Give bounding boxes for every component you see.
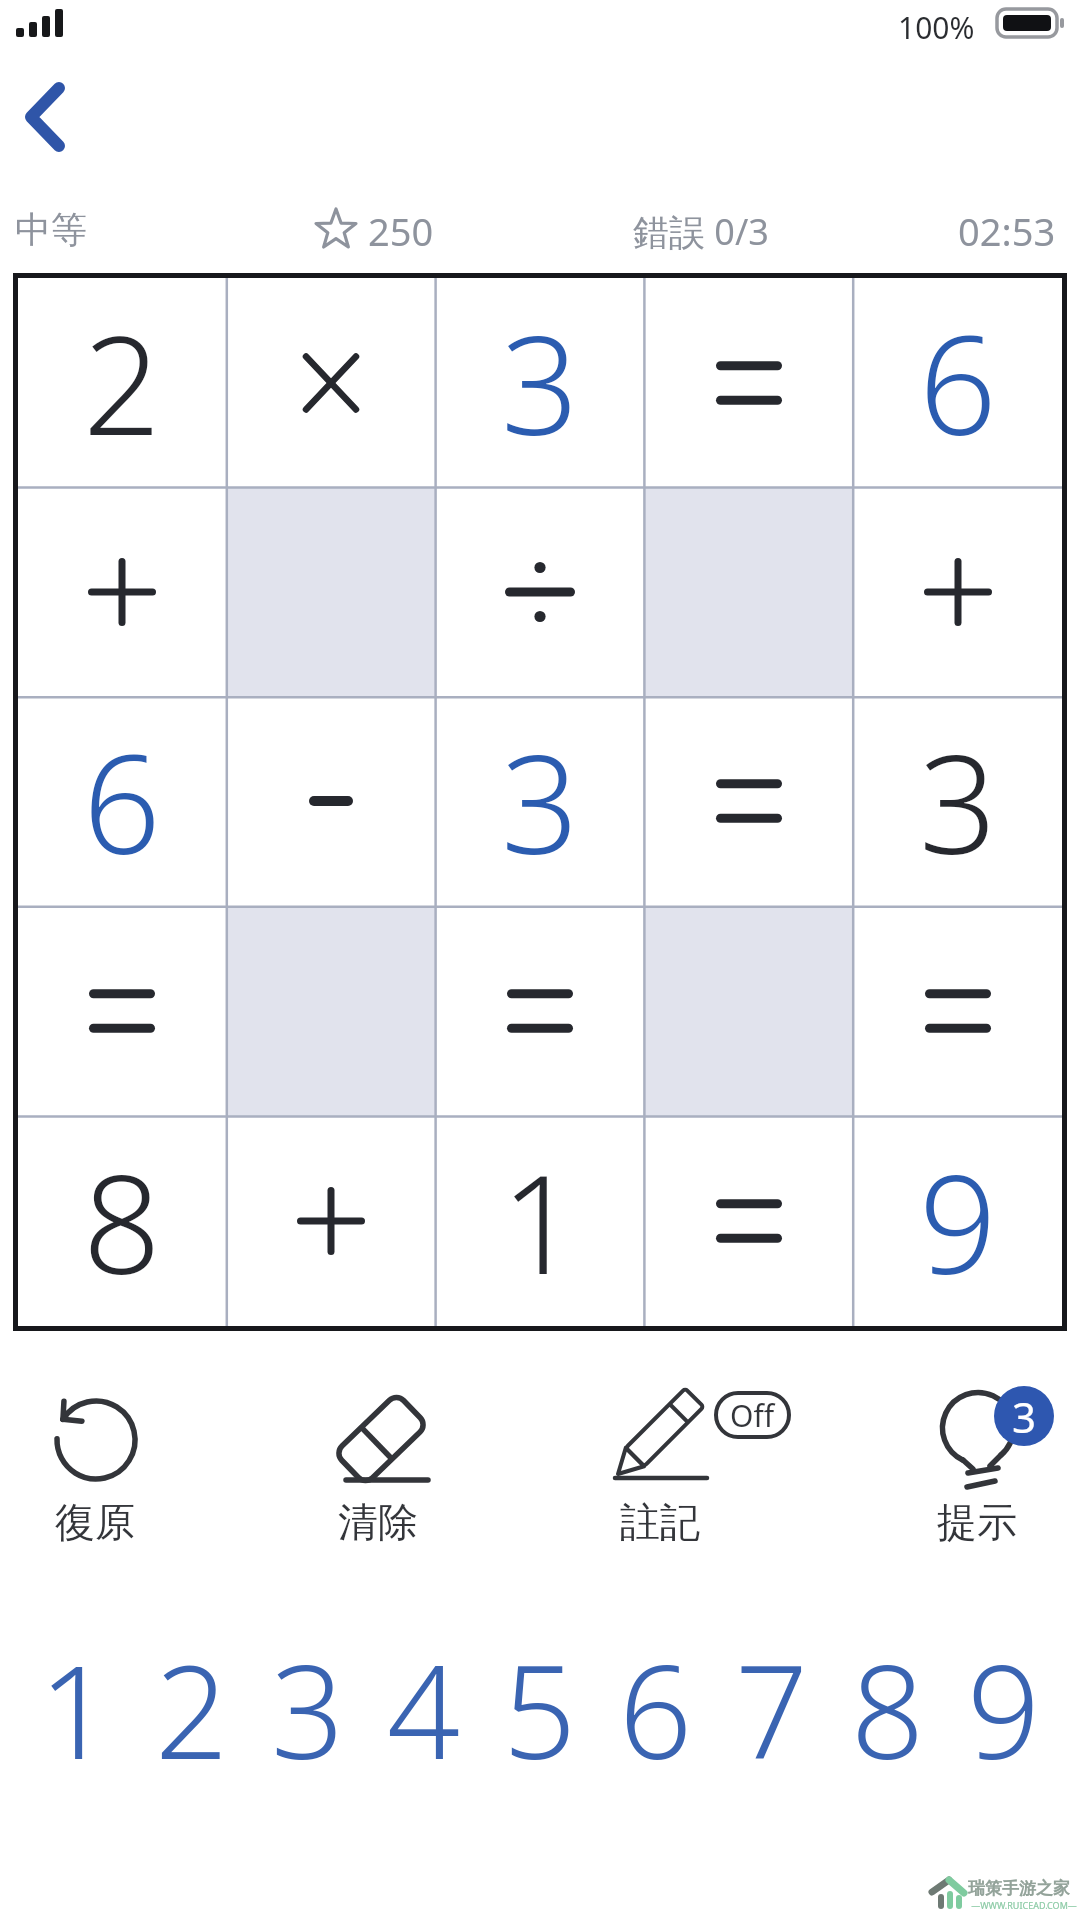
staticText: 3 <box>271 1622 345 1792</box>
button[interactable] <box>853 906 1062 1116</box>
button[interactable] <box>644 487 853 696</box>
staticText: 5 <box>503 1622 577 1792</box>
button[interactable]: 提示 <box>922 1382 1032 1547</box>
button[interactable] <box>644 696 853 906</box>
button[interactable] <box>435 906 644 1116</box>
button[interactable]: 9 <box>946 1622 1062 1792</box>
staticText: —WWW.RUICEAD.COM— <box>968 1899 1080 1911</box>
staticText: 2 <box>155 1622 229 1792</box>
button[interactable]: 3 <box>250 1622 366 1792</box>
button[interactable]: 2 <box>134 1622 250 1792</box>
staticText: 6 <box>919 290 997 475</box>
staticText: 6 <box>619 1622 693 1792</box>
button[interactable] <box>226 696 435 906</box>
staticText: Off <box>730 1395 775 1436</box>
button[interactable] <box>226 278 435 487</box>
button[interactable]: 8 <box>18 1116 226 1326</box>
staticText: 4 <box>387 1622 461 1792</box>
staticText: 中等 <box>15 207 87 252</box>
button[interactable]: 1 <box>435 1116 644 1326</box>
staticText: 9 <box>919 1129 997 1314</box>
button[interactable] <box>14 76 78 160</box>
staticText: 3 <box>919 709 997 894</box>
staticText: 3 <box>501 709 579 894</box>
staticText: 提示 <box>937 1497 1017 1547</box>
button[interactable]: 清除 <box>323 1382 433 1547</box>
button[interactable]: 3 <box>853 696 1062 906</box>
staticText: 註記 <box>620 1497 700 1547</box>
button[interactable]: 4 <box>366 1622 482 1792</box>
staticText: 250 <box>368 205 434 257</box>
button[interactable]: 2 <box>18 278 226 487</box>
button[interactable]: 3 <box>435 696 644 906</box>
button[interactable] <box>644 278 853 487</box>
button[interactable]: 6 <box>853 278 1062 487</box>
button[interactable] <box>226 487 435 696</box>
staticText: 復原 <box>55 1497 135 1547</box>
button[interactable] <box>435 487 644 696</box>
button[interactable]: 8 <box>830 1622 946 1792</box>
button[interactable]: 9 <box>853 1116 1062 1326</box>
staticText: 9 <box>967 1622 1041 1792</box>
staticText: 2 <box>83 290 161 475</box>
staticText: 清除 <box>338 1497 418 1547</box>
button[interactable]: 6 <box>598 1622 714 1792</box>
button[interactable] <box>644 906 853 1116</box>
button[interactable]: 1 <box>18 1622 134 1792</box>
button[interactable] <box>226 906 435 1116</box>
staticText: 8 <box>851 1622 925 1792</box>
staticText: 錯誤 0/3 <box>633 207 769 256</box>
button[interactable]: 註記 <box>605 1382 715 1547</box>
staticText: 3 <box>1012 1388 1037 1445</box>
staticText: 3 <box>501 290 579 475</box>
button[interactable] <box>226 1116 435 1326</box>
staticText: 1 <box>501 1129 579 1314</box>
staticText: 100% <box>898 7 975 48</box>
button[interactable]: 5 <box>482 1622 598 1792</box>
staticText: 8 <box>83 1129 161 1314</box>
button[interactable] <box>644 1116 853 1326</box>
staticText: 6 <box>83 709 161 894</box>
button[interactable] <box>18 906 226 1116</box>
button[interactable]: 7 <box>714 1622 830 1792</box>
button[interactable]: 復原 <box>40 1382 150 1547</box>
button[interactable]: 6 <box>18 696 226 906</box>
button[interactable]: 3 <box>435 278 644 487</box>
staticText: 瑞策手游之家 <box>968 1878 1070 1899</box>
button[interactable] <box>18 487 226 696</box>
staticText: 02:53 <box>958 205 1056 257</box>
staticText: 1 <box>39 1622 113 1792</box>
staticText: 7 <box>735 1622 809 1792</box>
button[interactable] <box>853 487 1062 696</box>
